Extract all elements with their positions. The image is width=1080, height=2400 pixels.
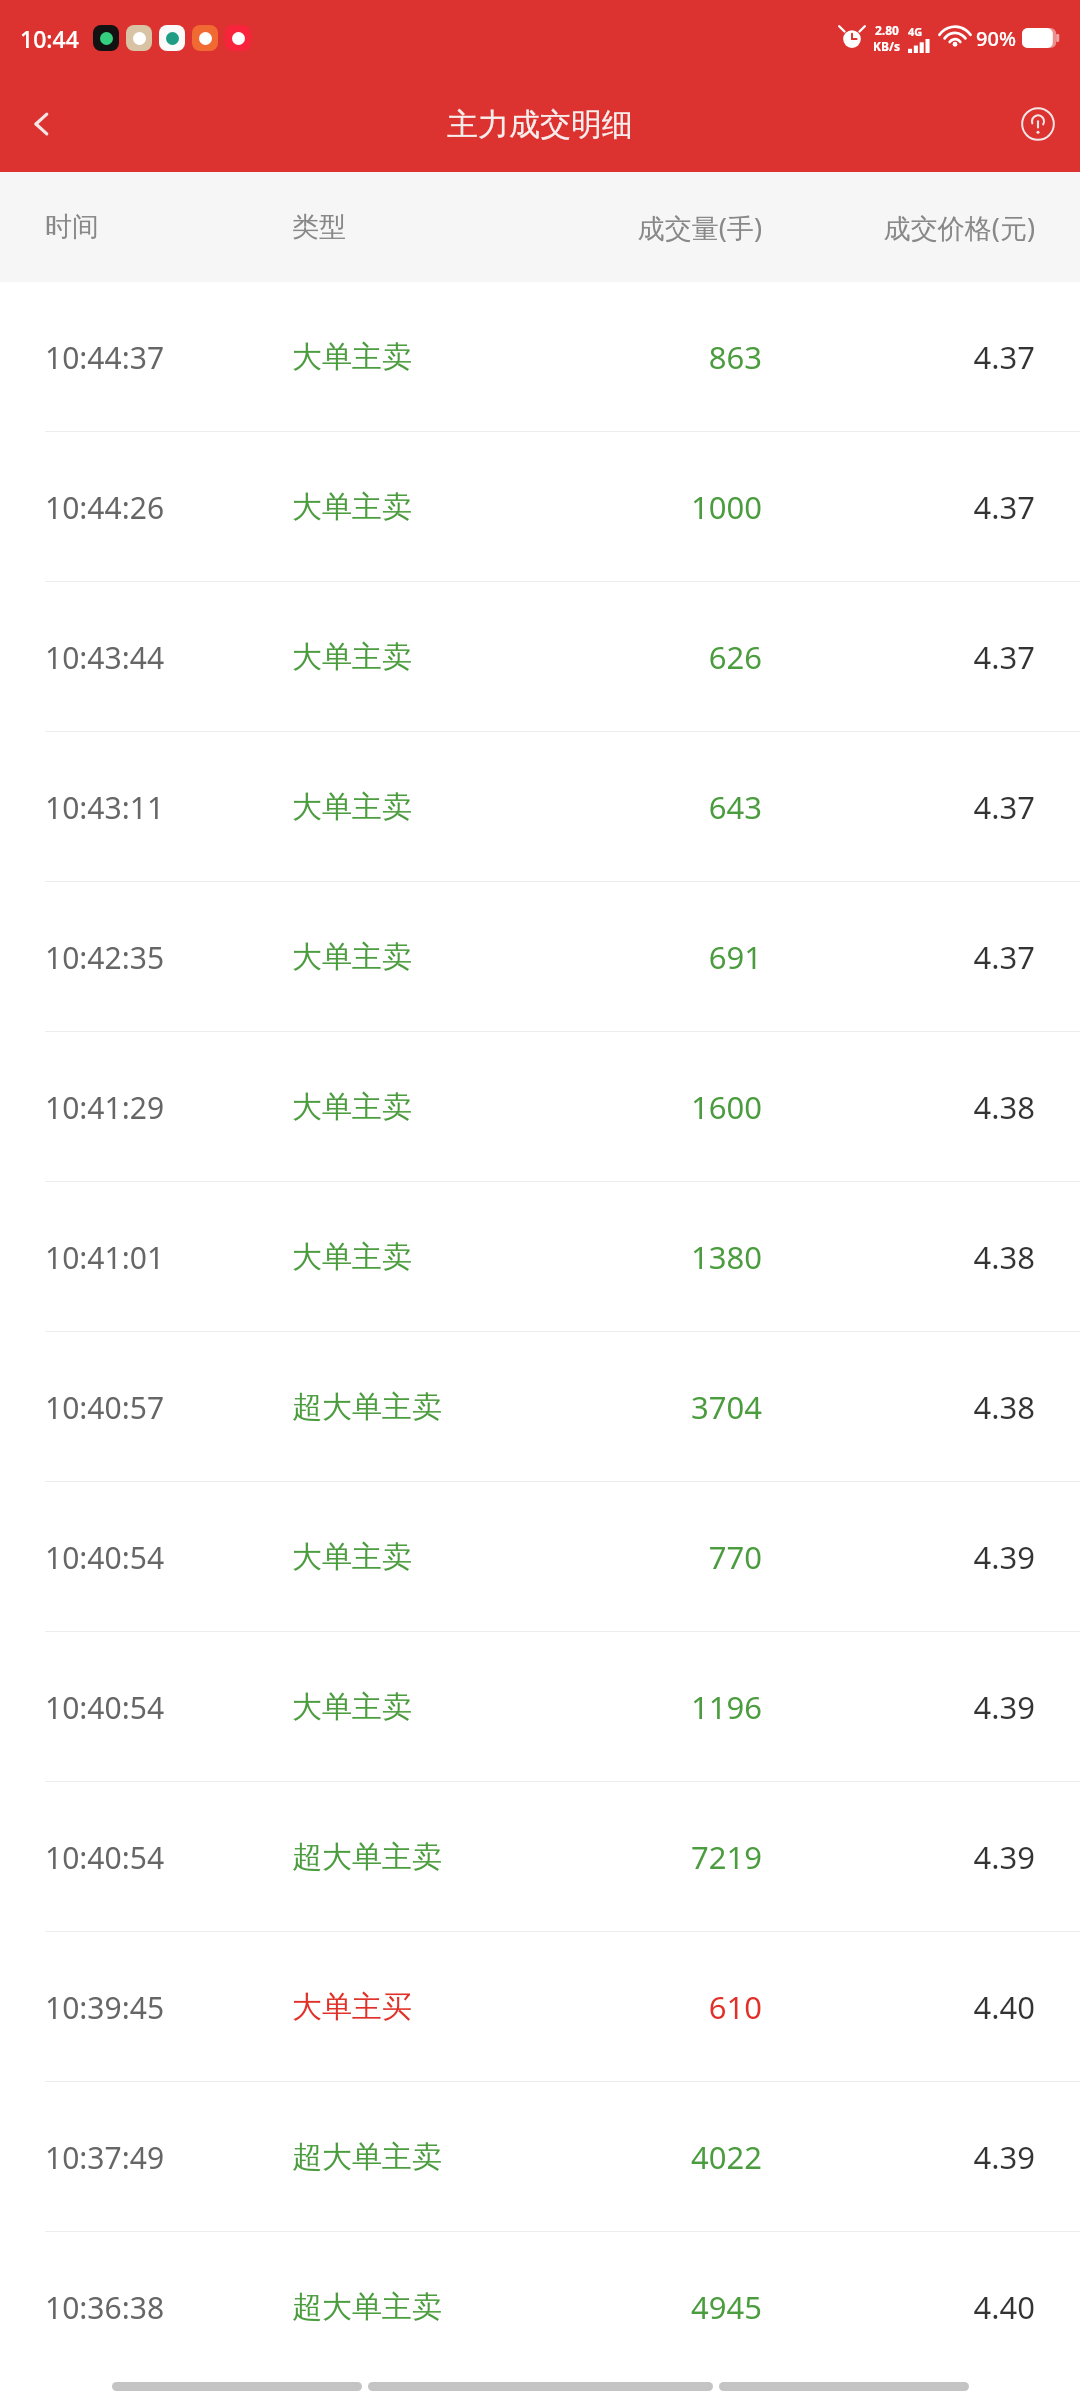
staticText: 10:40:54 — [45, 1687, 292, 1728]
staticText: 4945 — [582, 2286, 762, 2328]
staticText: 成交价格(元) — [790, 209, 1035, 246]
staticText: 4.38 — [810, 1236, 1035, 1278]
staticText: 主力成交明细 — [447, 105, 633, 144]
button[interactable]: 10:43:44 — [0, 582, 1080, 732]
staticText: 大单主卖 — [292, 788, 542, 826]
staticText: 1380 — [582, 1236, 762, 1278]
button[interactable]: Back — [0, 82, 84, 166]
staticText: 大单主卖 — [292, 338, 542, 376]
staticText: 超大单主卖 — [292, 1388, 542, 1426]
staticText: 4.38 — [810, 1086, 1035, 1128]
staticText: 4.37 — [810, 486, 1035, 528]
staticText: 610 — [582, 1986, 762, 2028]
staticText: 类型 — [292, 210, 462, 244]
staticText: 4.37 — [810, 786, 1035, 828]
button[interactable]: Help — [996, 82, 1080, 166]
staticText: 4.38 — [810, 1386, 1035, 1428]
staticText: 7219 — [582, 1836, 762, 1878]
staticText: 10:40:57 — [45, 1387, 292, 1428]
staticText: 10:42:35 — [45, 937, 292, 978]
staticText: 大单主卖 — [292, 1538, 542, 1576]
button[interactable]: 10:44:26 — [0, 432, 1080, 582]
button[interactable]: 10:43:11 — [0, 732, 1080, 882]
button[interactable]: 10:42:35 — [0, 882, 1080, 1032]
button[interactable]: 10:41:29 — [0, 1032, 1080, 1182]
staticText: 4.37 — [810, 636, 1035, 678]
staticText: 10:43:11 — [45, 787, 292, 828]
staticText: 10:36:38 — [45, 2287, 292, 2328]
staticText: 大单主买 — [292, 1988, 542, 2026]
staticText: 大单主卖 — [292, 1088, 542, 1126]
staticText: 4.37 — [810, 936, 1035, 978]
staticText: KB/s — [873, 38, 900, 54]
staticText: 大单主卖 — [292, 938, 542, 976]
staticText: 超大单主卖 — [292, 2138, 542, 2176]
button[interactable]: 10:39:45 — [0, 1932, 1080, 2082]
button[interactable]: 10:40:54 — [0, 1782, 1080, 1932]
staticText: 成交量(手) — [562, 209, 762, 246]
staticText: 4.39 — [810, 1536, 1035, 1578]
staticText: 10:43:44 — [45, 637, 292, 678]
staticText: 691 — [582, 936, 762, 978]
staticText: 863 — [582, 336, 762, 378]
staticText: 大单主卖 — [292, 1688, 542, 1726]
staticText: 10:41:01 — [45, 1237, 292, 1278]
button[interactable]: 10:40:54 — [0, 1632, 1080, 1782]
staticText: 4.40 — [810, 1986, 1035, 2028]
staticText: 10:39:45 — [45, 1987, 292, 2028]
button[interactable]: 10:44:37 — [0, 282, 1080, 432]
staticText: 时间 — [45, 210, 292, 244]
staticText: 超大单主卖 — [292, 2288, 542, 2326]
staticText: 10:44:37 — [45, 337, 292, 378]
staticText: 1196 — [582, 1686, 762, 1728]
staticText: 1000 — [582, 486, 762, 528]
button[interactable]: 10:40:57 — [0, 1332, 1080, 1482]
staticText: 1600 — [582, 1086, 762, 1128]
staticText: 10:41:29 — [45, 1087, 292, 1128]
staticText: 2.80 — [875, 22, 899, 38]
staticText: 10:44:26 — [45, 487, 292, 528]
staticText: 10:40:54 — [45, 1837, 292, 1878]
staticText: 4.40 — [810, 2286, 1035, 2328]
staticText: 4.37 — [810, 336, 1035, 378]
button[interactable]: 10:40:54 — [0, 1482, 1080, 1632]
staticText: 4.39 — [810, 1686, 1035, 1728]
staticText: 大单主卖 — [292, 488, 542, 526]
button[interactable]: 10:41:01 — [0, 1182, 1080, 1332]
staticText: 770 — [582, 1536, 762, 1578]
staticText: 大单主卖 — [292, 1238, 542, 1276]
staticText: 4.39 — [810, 1836, 1035, 1878]
button[interactable]: 10:37:49 — [0, 2082, 1080, 2232]
staticText: 3704 — [582, 1386, 762, 1428]
staticText: 超大单主卖 — [292, 1838, 542, 1876]
staticText: 4G — [908, 24, 923, 39]
staticText: 10:40:54 — [45, 1537, 292, 1578]
staticText: 90% — [976, 25, 1016, 52]
staticText: 626 — [582, 636, 762, 678]
staticText: 4022 — [582, 2136, 762, 2178]
button[interactable]: 10:36:38 — [0, 2232, 1080, 2372]
staticText: 10:44 — [20, 23, 79, 54]
staticText: 643 — [582, 786, 762, 828]
staticText: 10:37:49 — [45, 2137, 292, 2178]
staticText: 4.39 — [810, 2136, 1035, 2178]
staticText: 大单主卖 — [292, 638, 542, 676]
